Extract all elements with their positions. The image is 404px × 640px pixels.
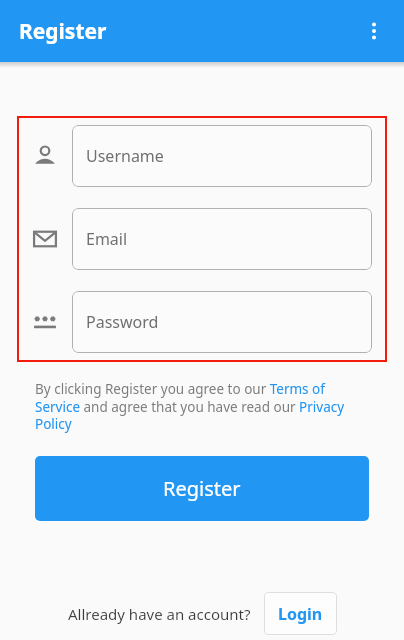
staticText: Register — [19, 17, 107, 46]
staticText: Username — [86, 145, 164, 167]
button[interactable]: Password — [72, 291, 372, 353]
button[interactable]: Email — [72, 208, 372, 270]
staticText: Allready have an account? — [68, 604, 251, 624]
button[interactable]: Login — [264, 592, 337, 635]
button[interactable]: Register — [35, 456, 369, 521]
staticText: Password — [86, 311, 159, 333]
staticText: Login — [278, 603, 323, 625]
button[interactable]: Username — [72, 125, 372, 187]
staticText: Register — [163, 475, 241, 502]
staticText: Email — [86, 228, 128, 250]
button[interactable]: More options — [353, 10, 395, 52]
button[interactable]: By clicking Register you agree to our Te… — [35, 380, 362, 433]
